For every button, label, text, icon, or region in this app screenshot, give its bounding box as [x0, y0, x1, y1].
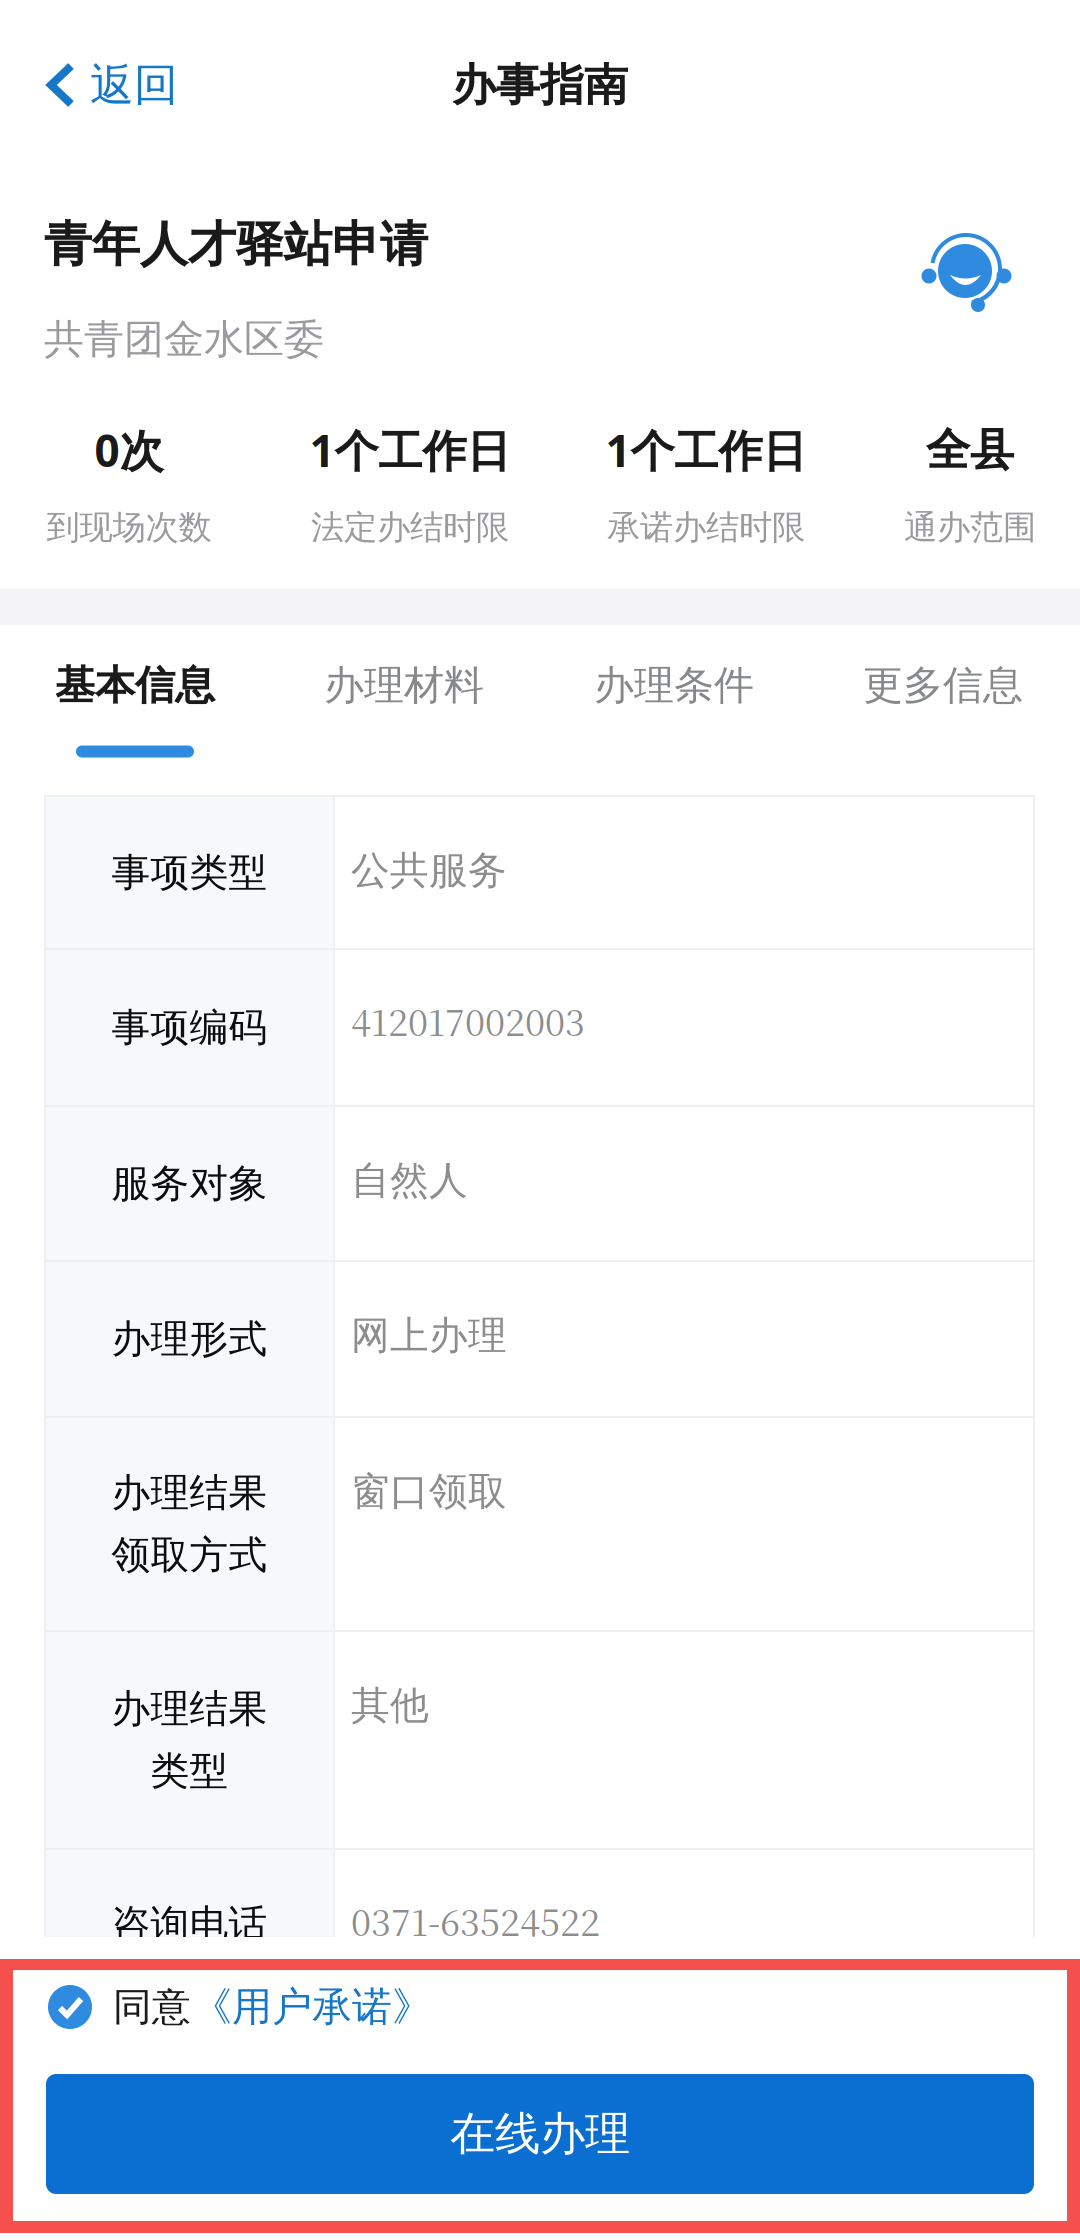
staticText: 法定办结时限	[311, 507, 509, 548]
staticText: 类型	[150, 1747, 228, 1795]
staticText: 办理结果	[111, 1685, 267, 1732]
staticText: 窗口领取	[351, 1468, 507, 1515]
button[interactable]: 更多信息	[810, 625, 1076, 794]
staticText: 1个工作日	[309, 421, 510, 479]
staticText: 服务对象	[111, 1160, 267, 1207]
staticText: 《用户承诺》	[192, 1982, 432, 2031]
button[interactable]: 办理材料	[270, 625, 538, 794]
staticText: 412017002003	[351, 995, 585, 1046]
staticText: 青年人才驿站申请	[44, 215, 428, 274]
staticText: 自然人	[351, 1157, 468, 1204]
staticText: 通办范围	[904, 507, 1036, 548]
staticText: 0次	[94, 421, 163, 479]
staticText: 0371-63524522	[351, 1895, 600, 1946]
staticText: 其他	[351, 1682, 429, 1729]
staticText: 公共服务	[351, 847, 507, 894]
button[interactable]: 基本信息	[0, 625, 270, 794]
staticText: 更多信息	[863, 661, 1023, 710]
button[interactable]: 返回	[0, 0, 202, 170]
staticText: 网上办理	[351, 1312, 507, 1359]
staticText: 在线办理	[450, 2106, 630, 2162]
staticText: 1个工作日	[605, 421, 806, 479]
staticText: 办理形式	[111, 1315, 267, 1363]
staticText: 办理材料	[324, 661, 484, 710]
button[interactable]: 在线办理	[46, 2074, 1034, 2194]
staticText: 咨询电话	[111, 1900, 267, 1948]
button[interactable]: 同意	[13, 1970, 1067, 2074]
staticText: 到现场次数	[46, 507, 211, 548]
staticText: 同意	[113, 1983, 191, 2031]
staticText: 领取方式	[111, 1531, 267, 1579]
staticText: 办理结果	[111, 1469, 267, 1516]
staticText: 返回	[90, 58, 178, 112]
staticText: 全县	[926, 423, 1014, 477]
staticText: 共青团金水区委	[44, 315, 324, 364]
staticText: 办理条件	[594, 661, 754, 710]
button[interactable]: 在线客服	[916, 225, 1016, 341]
staticText: 承诺办结时限	[607, 507, 805, 548]
staticText: 办事指南	[452, 58, 628, 112]
staticText: 基本信息	[55, 661, 215, 710]
staticText: 事项类型	[111, 849, 267, 896]
button[interactable]: 办理条件	[538, 625, 810, 794]
staticText: 事项编码	[111, 1004, 267, 1051]
